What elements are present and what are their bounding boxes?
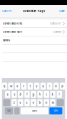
button[interactable]: Emoji <box>14 107 19 114</box>
button[interactable]: e <box>15 83 20 90</box>
staticText: n <box>45 101 47 104</box>
button[interactable]: camera <box>0 36 67 44</box>
button[interactable]: x <box>18 99 23 106</box>
staticText: p <box>61 84 63 88</box>
staticText: camera <box>2 39 9 42</box>
button[interactable]: space <box>21 107 48 114</box>
button[interactable]: g <box>31 91 36 98</box>
staticText: space <box>32 110 37 112</box>
staticText: s <box>14 93 15 96</box>
button[interactable]: Save <box>57 5 67 17</box>
button[interactable]: t <box>28 83 33 90</box>
staticText: z <box>13 101 15 104</box>
button[interactable]: v <box>31 99 36 106</box>
button[interactable]: m <box>50 99 55 106</box>
button[interactable]: q <box>2 83 7 90</box>
button[interactable]: u <box>40 83 46 90</box>
button[interactable]: h <box>37 91 43 98</box>
staticText: Camera <box>53 30 61 33</box>
staticText: v <box>32 101 34 104</box>
button[interactable]: r <box>21 83 26 90</box>
button[interactable]: k <box>50 91 55 98</box>
staticText: e <box>16 84 18 88</box>
staticText: Surveillance Type <box>2 30 21 33</box>
staticText: f <box>26 93 27 96</box>
staticText: done <box>54 110 58 112</box>
staticText: Surveillance Kind <box>2 22 22 25</box>
button[interactable]: o <box>53 83 59 90</box>
staticText: y <box>36 84 38 88</box>
button[interactable]: Surveillance Type <box>0 28 67 36</box>
staticText: x <box>20 101 22 104</box>
staticText: Customize Tags <box>22 9 44 13</box>
staticText: a <box>7 93 9 96</box>
button[interactable]: done <box>49 107 62 114</box>
staticText: w <box>10 84 12 88</box>
button[interactable]: f <box>24 91 30 98</box>
button[interactable]: Surveillance Kind <box>0 20 67 28</box>
staticText: k <box>52 93 54 96</box>
staticText: h <box>39 93 41 96</box>
staticText: l <box>59 93 60 96</box>
button[interactable]: n <box>44 99 49 106</box>
button[interactable]: l <box>57 91 62 98</box>
button[interactable]: p <box>60 83 65 90</box>
button[interactable]: b <box>37 99 43 106</box>
button[interactable]: Cancel <box>0 5 14 17</box>
button[interactable]: a <box>5 91 10 98</box>
staticText: g <box>32 93 34 96</box>
button[interactable]: c <box>24 99 30 106</box>
button[interactable] <box>0 45 67 53</box>
button[interactable]: i <box>47 83 52 90</box>
staticText: j <box>46 93 47 96</box>
button[interactable]: y <box>34 83 39 90</box>
button[interactable]: z <box>11 99 17 106</box>
staticText: i <box>49 84 50 88</box>
staticText: Save <box>59 9 65 13</box>
staticText: d <box>20 93 22 96</box>
button[interactable]: Delete <box>57 99 64 106</box>
staticText: t <box>30 84 31 88</box>
button[interactable]: w <box>8 83 14 90</box>
button[interactable]: s <box>11 91 17 98</box>
staticText: Cancel <box>2 9 12 13</box>
staticText: m <box>52 101 54 104</box>
staticText: q <box>3 84 5 88</box>
button[interactable]: d <box>18 91 23 98</box>
staticText: Outdoor <box>50 22 61 25</box>
staticText: u <box>42 84 44 88</box>
staticText: b <box>39 101 41 104</box>
button[interactable]: 123 <box>5 107 13 114</box>
staticText: o <box>55 84 57 88</box>
staticText: r <box>23 84 24 88</box>
staticText: 123 <box>7 110 10 112</box>
staticText: c <box>26 101 28 104</box>
button[interactable]: j <box>44 91 49 98</box>
button[interactable]: Shift <box>3 99 10 106</box>
